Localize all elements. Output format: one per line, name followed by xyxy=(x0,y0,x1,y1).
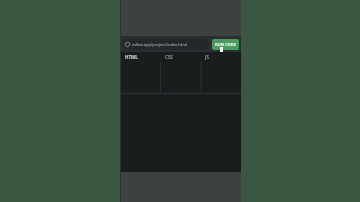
staticText: editor.app/project/index.html xyxy=(132,42,187,47)
staticText: HTML xyxy=(125,54,138,60)
button[interactable]: editor.app/project/index.html xyxy=(122,39,209,50)
button[interactable]: Run xyxy=(212,39,239,50)
button[interactable]: CSS xyxy=(165,52,205,62)
button[interactable]: HTML xyxy=(125,52,165,62)
staticText: JS xyxy=(205,54,209,60)
button[interactable]: JS xyxy=(205,52,241,62)
staticText: RUN CODE xyxy=(215,42,236,47)
staticText: CSS xyxy=(165,54,173,60)
